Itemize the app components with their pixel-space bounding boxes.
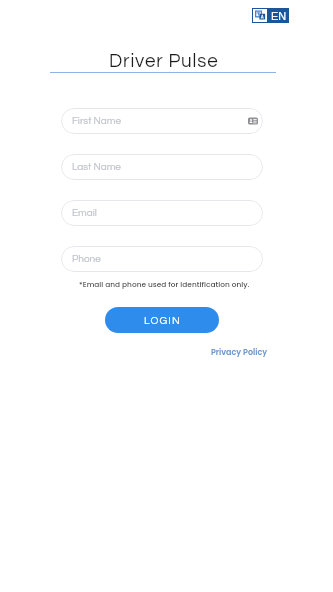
button[interactable]: First Name	[61, 108, 263, 134]
staticText: First Name	[72, 116, 248, 126]
button[interactable]: Last Name	[61, 154, 263, 180]
staticText: Email	[72, 208, 258, 218]
button[interactable]: Select language	[252, 8, 289, 23]
staticText: *Email and phone used for identification…	[79, 279, 250, 289]
other: Choose contact	[248, 116, 258, 126]
button[interactable]: Email	[61, 200, 263, 226]
staticText: LOGIN	[144, 315, 181, 326]
staticText: Phone	[72, 254, 258, 264]
staticText: Last Name	[72, 162, 258, 172]
button[interactable]: Phone	[61, 246, 263, 272]
staticText: Driver Pulse	[109, 52, 219, 71]
staticText: EN	[271, 10, 287, 22]
staticText: Privacy Policy	[211, 347, 268, 358]
button[interactable]: Privacy Policy	[211, 347, 268, 358]
button[interactable]: LOGIN	[105, 307, 219, 333]
